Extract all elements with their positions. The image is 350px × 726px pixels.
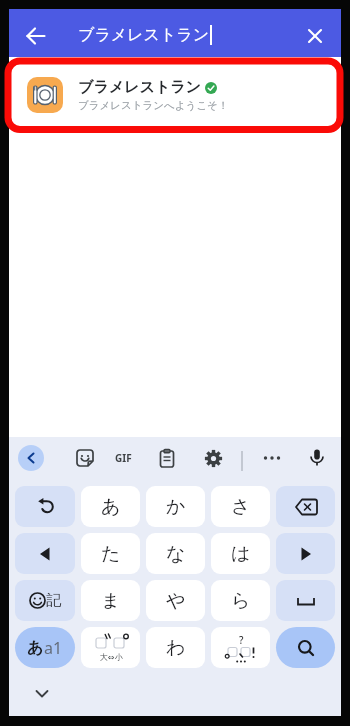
button[interactable] [276, 486, 335, 527]
staticText: 記 [46, 591, 61, 610]
button[interactable]: わ [146, 627, 205, 668]
button[interactable]: ら [211, 580, 270, 621]
button[interactable] [305, 446, 329, 470]
button[interactable]: や [146, 580, 205, 621]
staticText: ま [101, 589, 121, 613]
button[interactable]: あ [81, 486, 140, 527]
staticText: ブラメレストラン [78, 78, 201, 97]
staticText: か [166, 495, 186, 519]
button[interactable]: 大⇔小 [81, 627, 140, 668]
staticText: GIF [115, 451, 132, 465]
button[interactable] [15, 486, 75, 527]
staticText: あ [27, 638, 44, 658]
button[interactable]: さ [211, 486, 270, 527]
button[interactable] [301, 22, 329, 50]
staticText: ブラメレストランへようこそ！ [78, 99, 229, 112]
button[interactable]: ブラメレストラン [27, 67, 329, 123]
staticText: 大⇔小 [100, 652, 123, 662]
button[interactable] [260, 446, 284, 470]
staticText: な [166, 542, 186, 566]
button[interactable]: は [211, 533, 270, 574]
staticText: ? [239, 633, 244, 647]
button[interactable]: か [146, 486, 205, 527]
button[interactable]: た [81, 533, 140, 574]
staticText: あ [101, 495, 121, 519]
button[interactable] [276, 627, 335, 668]
staticText: や [166, 589, 186, 613]
staticText: ブラメレストラン [78, 25, 209, 45]
button[interactable]: ま [81, 580, 140, 621]
button[interactable] [73, 446, 97, 470]
button[interactable] [276, 533, 335, 574]
button[interactable] [201, 446, 225, 470]
button[interactable]: GIF [109, 446, 137, 470]
staticText: は [231, 542, 251, 566]
button[interactable] [22, 22, 50, 50]
button[interactable] [18, 445, 44, 471]
button[interactable]: な [146, 533, 205, 574]
button[interactable]: あ [15, 627, 75, 668]
staticText: さ [231, 495, 251, 519]
staticText: わ [166, 636, 186, 660]
button[interactable]: ? [211, 627, 270, 668]
staticText: ら [231, 589, 251, 613]
button[interactable] [155, 446, 179, 470]
button[interactable]: 記 [15, 580, 75, 621]
button[interactable] [276, 580, 335, 621]
staticText: a1 [44, 637, 63, 659]
button[interactable] [15, 533, 75, 574]
staticText: た [101, 542, 121, 566]
